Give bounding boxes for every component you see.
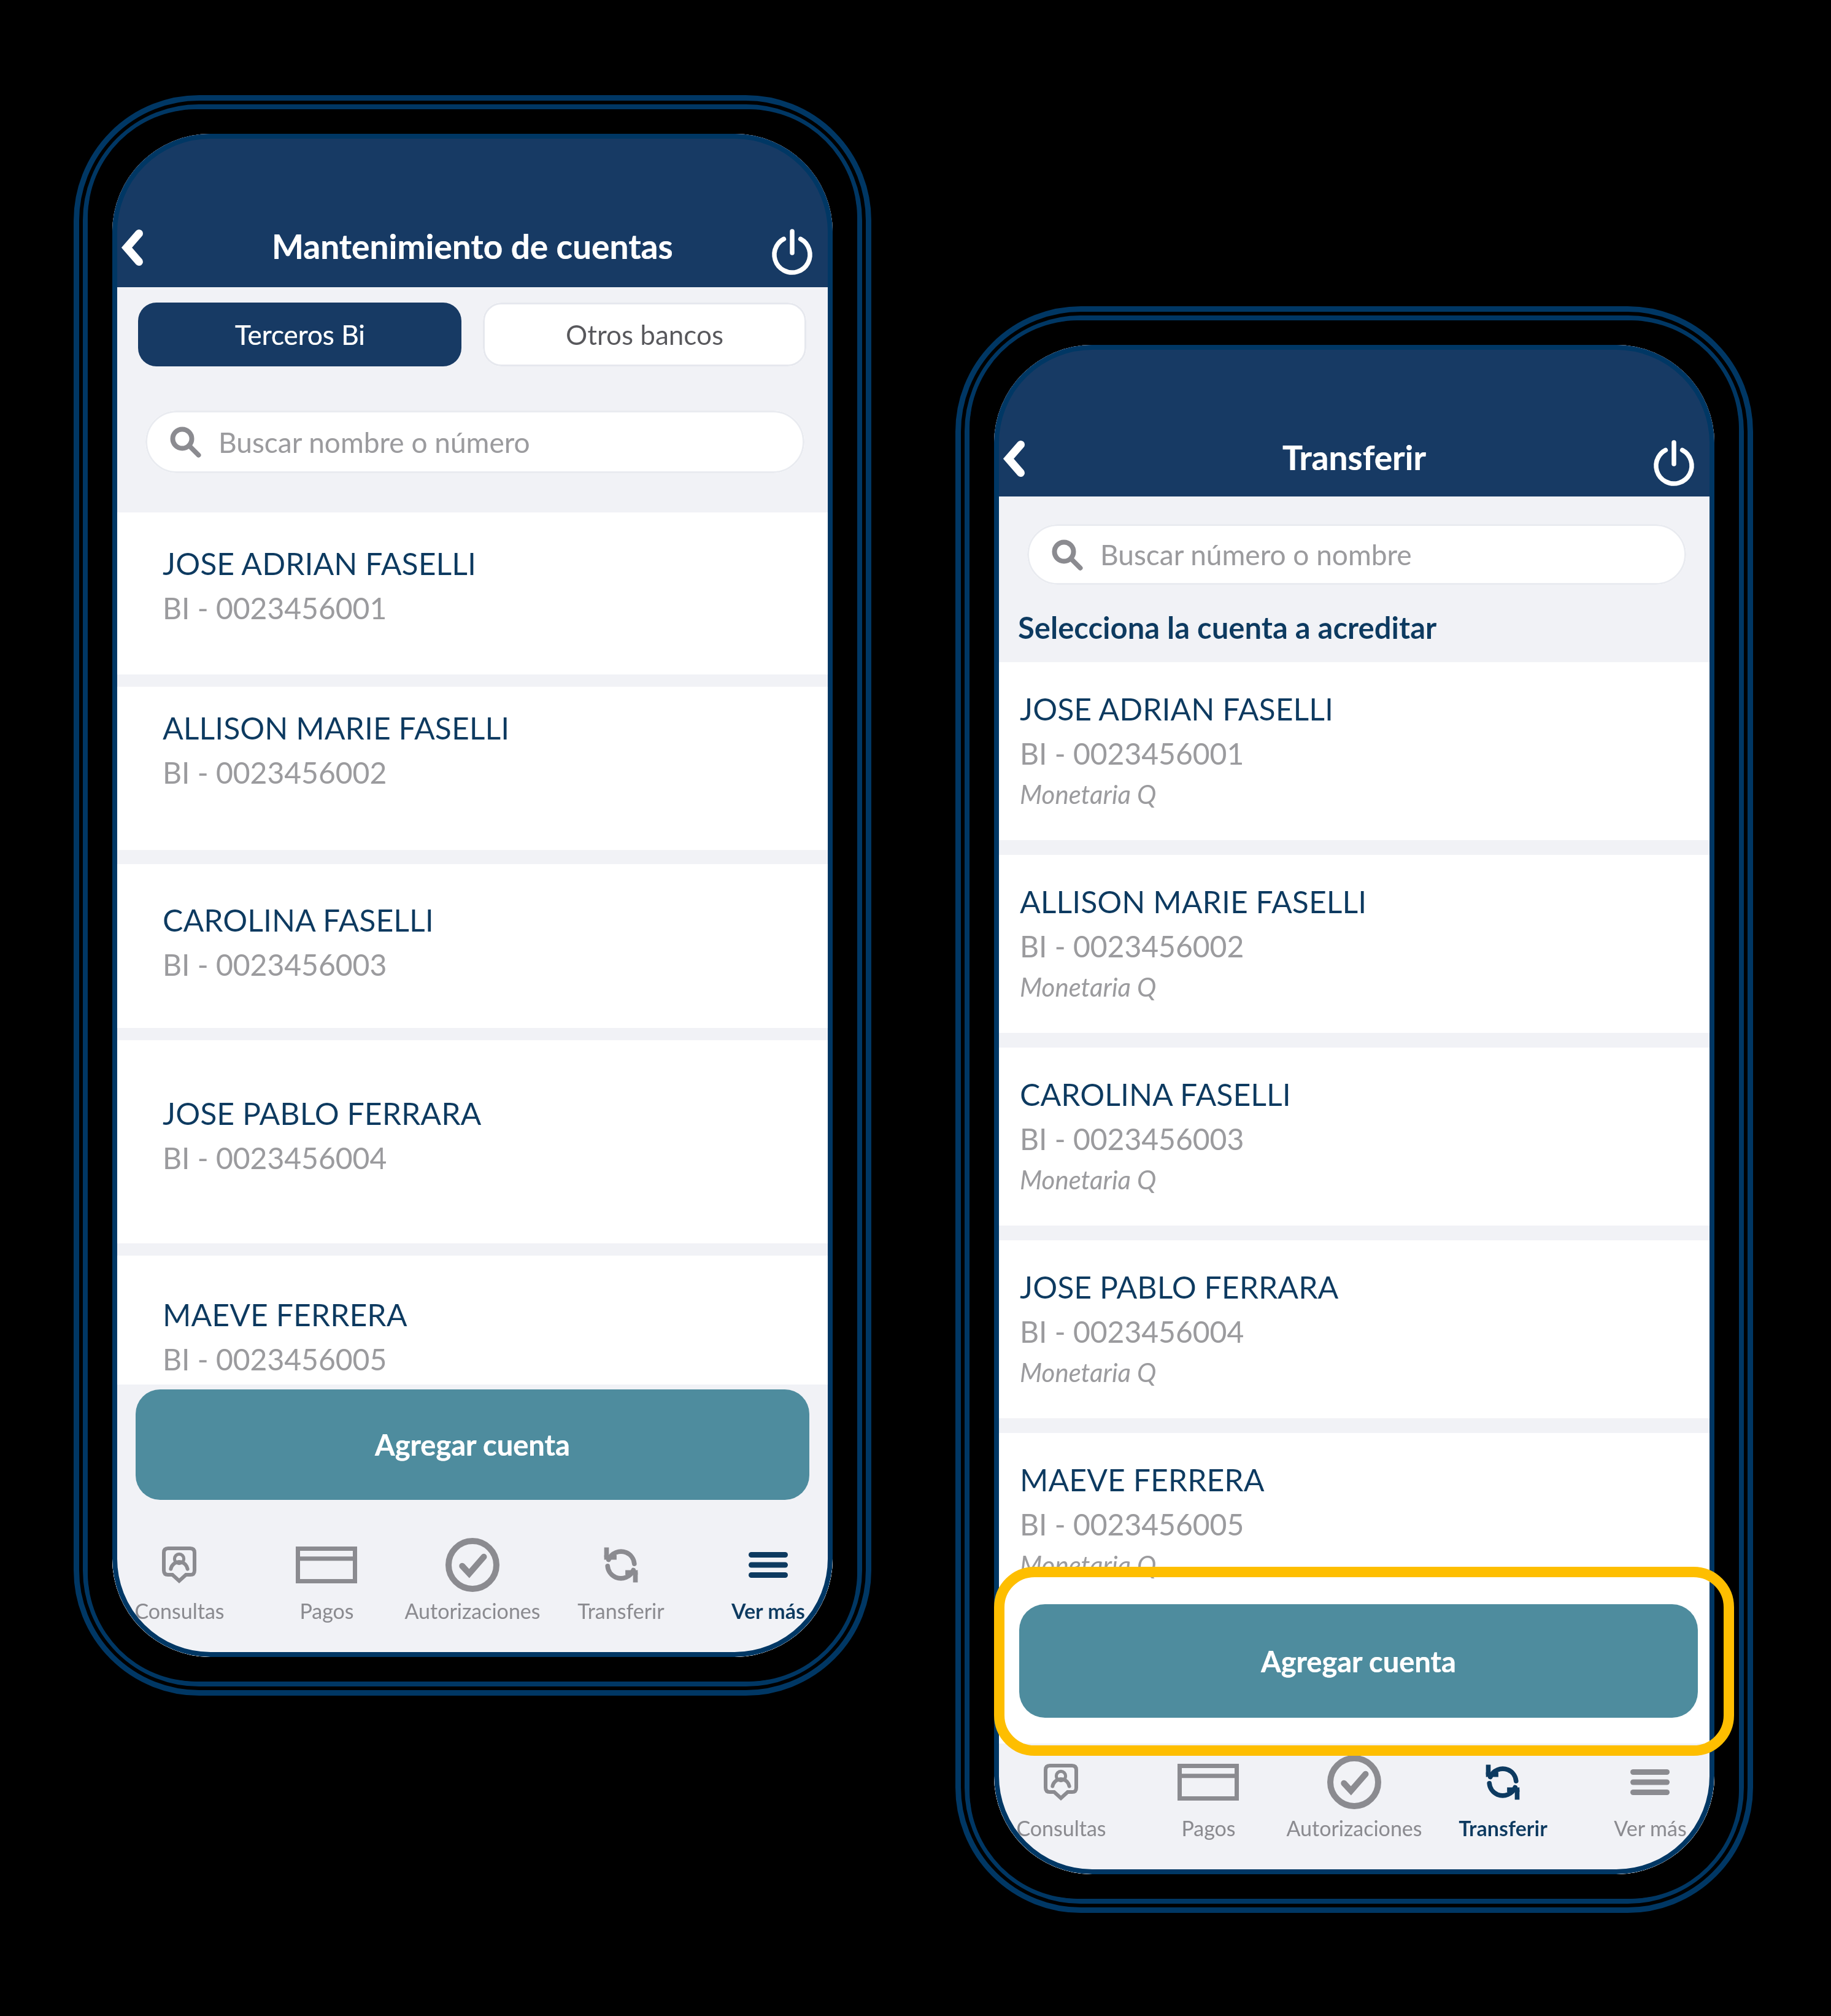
staticText: Terceros Bi: [235, 319, 365, 351]
staticText: Agregar cuenta: [375, 1427, 570, 1462]
button[interactable]: Transferir: [549, 1500, 693, 1657]
button[interactable]: Ver más: [696, 1500, 833, 1657]
button[interactable]: Buscar número o nombre: [1027, 524, 1686, 585]
staticText: Buscar nombre o número: [218, 425, 530, 459]
button[interactable]: Back: [112, 214, 166, 281]
staticText: Selecciona la cuenta a acreditar: [1018, 609, 1437, 646]
button[interactable]: ALLISON MARIE FASELLI: [994, 855, 1714, 1033]
button[interactable]: Log out: [758, 215, 826, 282]
staticText: Monetaria Q: [1020, 1164, 1157, 1195]
button[interactable]: Terceros Bi: [138, 303, 461, 366]
button[interactable]: Ver más: [1578, 1744, 1714, 1874]
button[interactable]: MAEVE FERRERA: [994, 1433, 1714, 1611]
staticText: JOSE ADRIAN FASELLI: [1020, 690, 1333, 727]
button[interactable]: Consultas: [994, 1744, 1133, 1874]
staticText: MAEVE FERRERA: [1020, 1461, 1265, 1498]
staticText: BI - 0023456001: [163, 590, 387, 626]
staticText: Pagos: [1181, 1815, 1236, 1840]
staticText: BI - 0023456005: [163, 1342, 387, 1377]
staticText: Transferir: [1459, 1815, 1548, 1840]
staticText: Ver más: [731, 1598, 805, 1623]
staticText: BI - 0023456001: [1020, 736, 1244, 771]
button[interactable]: Agregar cuenta: [136, 1389, 809, 1500]
staticText: JOSE ADRIAN FASELLI: [163, 545, 476, 582]
button[interactable]: Agregar cuenta: [1019, 1604, 1698, 1718]
staticText: Otros bancos: [566, 319, 723, 351]
button[interactable]: Pagos: [255, 1500, 398, 1657]
button[interactable]: ALLISON MARIE FASELLI: [112, 687, 833, 850]
staticText: Consultas: [1016, 1815, 1106, 1840]
staticText: BI - 0023456005: [1020, 1507, 1244, 1542]
staticText: Consultas: [134, 1598, 225, 1623]
staticText: Autorizaciones: [1286, 1815, 1422, 1840]
button[interactable]: Otros bancos: [483, 303, 806, 366]
staticText: Pagos: [299, 1598, 354, 1623]
staticText: Mantenimiento de cuentas: [272, 226, 673, 266]
staticText: Transferir: [1282, 437, 1427, 477]
button[interactable]: Buscar nombre o número: [145, 411, 804, 473]
staticText: Ver más: [1614, 1815, 1687, 1840]
button[interactable]: CAROLINA FASELLI: [994, 1048, 1714, 1226]
staticText: JOSE PABLO FERRARA: [1020, 1269, 1339, 1305]
staticText: Agregar cuenta: [1261, 1644, 1456, 1678]
staticText: CAROLINA FASELLI: [1020, 1076, 1291, 1113]
button[interactable]: Back: [994, 425, 1048, 492]
button[interactable]: Transferir: [1431, 1744, 1575, 1874]
staticText: Monetaria Q: [1020, 1550, 1157, 1580]
staticText: BI - 0023456003: [1020, 1121, 1244, 1157]
staticText: Monetaria Q: [1020, 971, 1157, 1002]
staticText: BI - 0023456002: [163, 755, 387, 790]
button[interactable]: JOSE ADRIAN FASELLI: [112, 512, 833, 674]
button[interactable]: Autorizaciones: [1282, 1744, 1426, 1874]
button[interactable]: Pagos: [1136, 1744, 1280, 1874]
staticText: BI - 0023456004: [1020, 1314, 1244, 1350]
staticText: JOSE PABLO FERRARA: [163, 1095, 482, 1132]
button[interactable]: MAEVE FERRERA: [112, 1256, 833, 1385]
staticText: ALLISON MARIE FASELLI: [163, 709, 510, 746]
button[interactable]: CAROLINA FASELLI: [112, 864, 833, 1028]
staticText: ALLISON MARIE FASELLI: [1020, 883, 1367, 920]
staticText: Monetaria Q: [1020, 1357, 1157, 1388]
staticText: Buscar número o nombre: [1100, 538, 1412, 571]
staticText: Monetaria Q: [1020, 779, 1157, 809]
staticText: BI - 0023456003: [163, 947, 387, 983]
button[interactable]: Log out: [1640, 426, 1708, 493]
button[interactable]: Consultas: [112, 1500, 251, 1657]
staticText: Autorizaciones: [404, 1598, 541, 1623]
button[interactable]: JOSE PABLO FERRARA: [112, 1040, 833, 1243]
staticText: CAROLINA FASELLI: [163, 902, 434, 938]
button[interactable]: Autorizaciones: [401, 1500, 544, 1657]
button[interactable]: JOSE ADRIAN FASELLI: [994, 662, 1714, 840]
staticText: BI - 0023456004: [163, 1140, 387, 1176]
staticText: BI - 0023456002: [1020, 929, 1244, 964]
staticText: Transferir: [577, 1598, 665, 1623]
staticText: MAEVE FERRERA: [163, 1296, 407, 1333]
button[interactable]: JOSE PABLO FERRARA: [994, 1240, 1714, 1418]
